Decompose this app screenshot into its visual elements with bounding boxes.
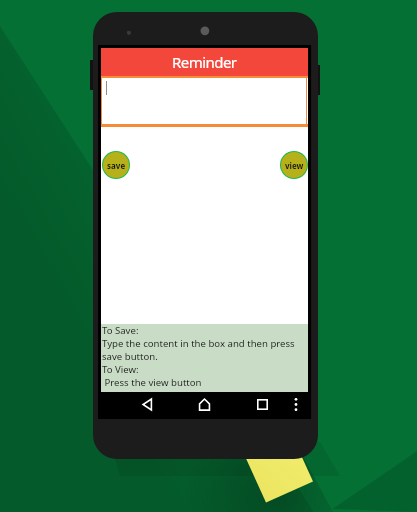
staticText: To View: [102,363,139,376]
staticText: Reminder [172,52,237,72]
button[interactable]: Back [124,392,170,416]
button[interactable]: Recents [239,392,285,416]
staticText: view [285,160,304,171]
staticText: Type the content in the box and then pre… [102,337,295,350]
button[interactable] [101,78,308,124]
button[interactable]: view [281,152,307,178]
staticText: save button. [102,350,158,363]
staticText: Press the view button [102,376,202,389]
staticText: To Save: [102,324,139,337]
button[interactable]: More options [284,392,308,416]
button[interactable]: Home [181,392,227,416]
staticText: save [107,160,126,171]
button[interactable]: Reminder [101,48,308,76]
button[interactable]: save [103,152,129,178]
